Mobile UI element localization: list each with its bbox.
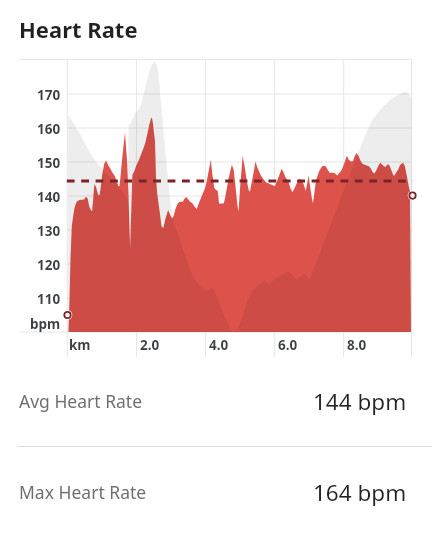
staticText: 140 (37, 188, 61, 206)
staticText: 6.0 (278, 336, 298, 354)
staticText: 2.0 (140, 336, 160, 354)
staticText: Max Heart Rate (19, 480, 147, 504)
staticText: 4.0 (209, 336, 229, 354)
staticText: km (69, 336, 91, 354)
staticText: Heart Rate (19, 14, 138, 44)
staticText: 8.0 (347, 336, 367, 354)
staticText: 160 (37, 120, 61, 138)
staticText: 110 (37, 290, 61, 308)
staticText: 170 (37, 86, 61, 104)
staticText: 120 (37, 256, 61, 274)
staticText: 164 bpm (313, 477, 407, 508)
staticText: Avg Heart Rate (19, 389, 143, 413)
staticText: 144 bpm (313, 386, 407, 417)
button[interactable]: Avg Heart Rate (0, 356, 432, 446)
staticText: bpm (30, 315, 61, 333)
staticText: 130 (37, 222, 61, 240)
staticText: 150 (37, 154, 61, 172)
button[interactable]: Max Heart Rate (0, 447, 432, 537)
